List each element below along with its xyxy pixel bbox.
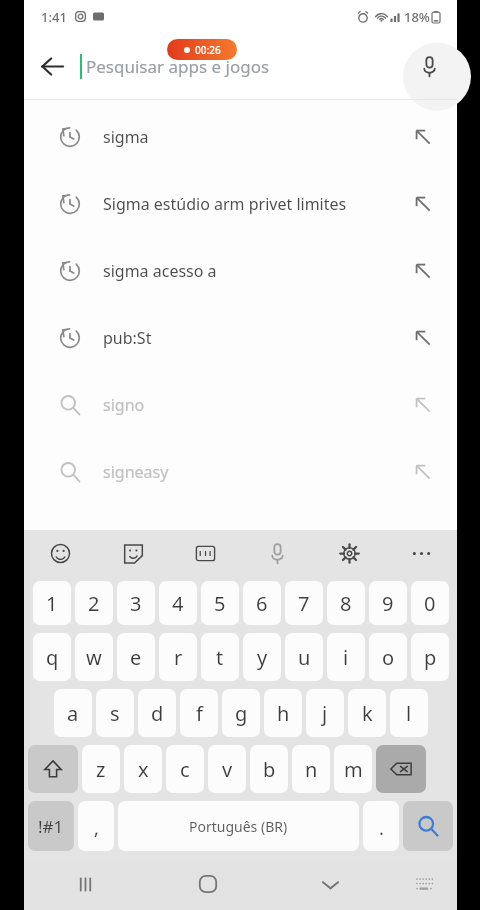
button[interactable]: signo	[24, 371, 457, 438]
button[interactable]: 8	[327, 581, 365, 625]
button[interactable]: Insert suggestion	[401, 249, 445, 293]
button[interactable]: Insert suggestion	[401, 383, 445, 427]
staticText: 5	[214, 590, 226, 617]
button[interactable]: 1	[33, 581, 71, 625]
staticText: b	[263, 756, 276, 783]
button[interactable]: j	[306, 689, 344, 737]
button[interactable]: sigma acesso a	[24, 237, 457, 304]
staticText: pub:St	[103, 327, 152, 349]
button[interactable]: d	[138, 689, 176, 737]
button[interactable]: Insert suggestion	[401, 182, 445, 226]
button[interactable]: 2	[75, 581, 113, 625]
button[interactable]: f	[180, 689, 218, 737]
button[interactable]: o	[369, 633, 407, 681]
button[interactable]: .	[363, 801, 399, 851]
button[interactable]: Voice input	[241, 530, 313, 577]
button[interactable]: Home	[147, 858, 269, 910]
button[interactable]: signeasy	[24, 438, 457, 505]
staticText: signeasy	[103, 461, 169, 483]
staticText: sigma	[103, 126, 149, 148]
staticText: y	[257, 644, 268, 671]
button[interactable]: pub:St	[24, 304, 457, 371]
staticText: 8	[340, 590, 352, 617]
button[interactable]: Change keyboard	[391, 858, 457, 910]
staticText: Português (BR)	[189, 817, 288, 836]
staticText: .	[379, 816, 384, 841]
button[interactable]: Português (BR)	[118, 801, 359, 851]
button[interactable]: r	[159, 633, 197, 681]
staticText: ,	[94, 816, 99, 841]
staticText: 18%	[404, 8, 430, 26]
button[interactable]: Sigma estúdio arm privet limites	[24, 170, 457, 237]
button[interactable]: l	[390, 689, 428, 737]
button[interactable]: Hide keyboard	[269, 858, 391, 910]
button[interactable]: 9	[369, 581, 407, 625]
staticText: Pesquisar apps e jogos	[86, 55, 270, 78]
staticText: f	[196, 700, 203, 727]
staticText: sigma acesso a	[103, 260, 217, 282]
staticText: 7	[298, 590, 310, 617]
staticText: c	[180, 756, 190, 783]
button[interactable]: Emoji	[24, 530, 97, 577]
staticText: g	[235, 700, 248, 727]
staticText: z	[96, 756, 106, 783]
button[interactable]: Insert suggestion	[401, 450, 445, 494]
button[interactable]: Shift	[28, 745, 78, 793]
button[interactable]: Voice search	[401, 38, 457, 94]
button[interactable]: More options	[385, 530, 457, 577]
button[interactable]: m	[334, 745, 372, 793]
button[interactable]: 0	[411, 581, 449, 625]
staticText: Sigma estúdio arm privet limites	[103, 193, 347, 215]
staticText: 00:26	[195, 43, 221, 57]
button[interactable]: b	[250, 745, 288, 793]
button[interactable]: !#1	[28, 801, 74, 851]
staticText: 9	[382, 590, 394, 617]
button[interactable]: Backspace	[376, 745, 426, 793]
button[interactable]: q	[33, 633, 71, 681]
button[interactable]: s	[96, 689, 134, 737]
button[interactable]: t	[201, 633, 239, 681]
button[interactable]: ,	[78, 801, 114, 851]
button[interactable]: Pesquisar apps e jogos	[80, 33, 401, 99]
button[interactable]: i	[327, 633, 365, 681]
button[interactable]: z	[82, 745, 120, 793]
button[interactable]: h	[264, 689, 302, 737]
button[interactable]: 7	[285, 581, 323, 625]
button[interactable]: 3	[117, 581, 155, 625]
button[interactable]: k	[348, 689, 386, 737]
button[interactable]: 6	[243, 581, 281, 625]
button[interactable]: GIF	[169, 530, 241, 577]
button[interactable]: c	[166, 745, 204, 793]
button[interactable]: Insert suggestion	[401, 115, 445, 159]
staticText: r	[174, 644, 183, 671]
button[interactable]: Stickers	[97, 530, 169, 577]
staticText: i	[343, 644, 349, 671]
button[interactable]: a	[54, 689, 92, 737]
button[interactable]: Keyboard settings	[313, 530, 385, 577]
staticText: j	[322, 700, 328, 727]
button[interactable]: p	[411, 633, 449, 681]
button[interactable]: Search	[403, 801, 453, 851]
button[interactable]: x	[124, 745, 162, 793]
staticText: h	[277, 700, 290, 727]
staticText: x	[138, 756, 149, 783]
button[interactable]: Recent apps	[24, 858, 147, 910]
button[interactable]: y	[243, 633, 281, 681]
button[interactable]: e	[117, 633, 155, 681]
button[interactable]: u	[285, 633, 323, 681]
button[interactable]: w	[75, 633, 113, 681]
button[interactable]: Back	[24, 38, 80, 94]
button[interactable]: 4	[159, 581, 197, 625]
button[interactable]: g	[222, 689, 260, 737]
staticText: q	[46, 644, 59, 671]
staticText: signo	[103, 394, 145, 416]
button[interactable]: n	[292, 745, 330, 793]
staticText: 0	[424, 590, 436, 617]
staticText: d	[151, 700, 164, 727]
button[interactable]: v	[208, 745, 246, 793]
button[interactable]: Insert suggestion	[401, 316, 445, 360]
staticText: a	[67, 700, 79, 727]
staticText: p	[424, 644, 437, 671]
button[interactable]: sigma	[24, 103, 457, 170]
button[interactable]: 5	[201, 581, 239, 625]
